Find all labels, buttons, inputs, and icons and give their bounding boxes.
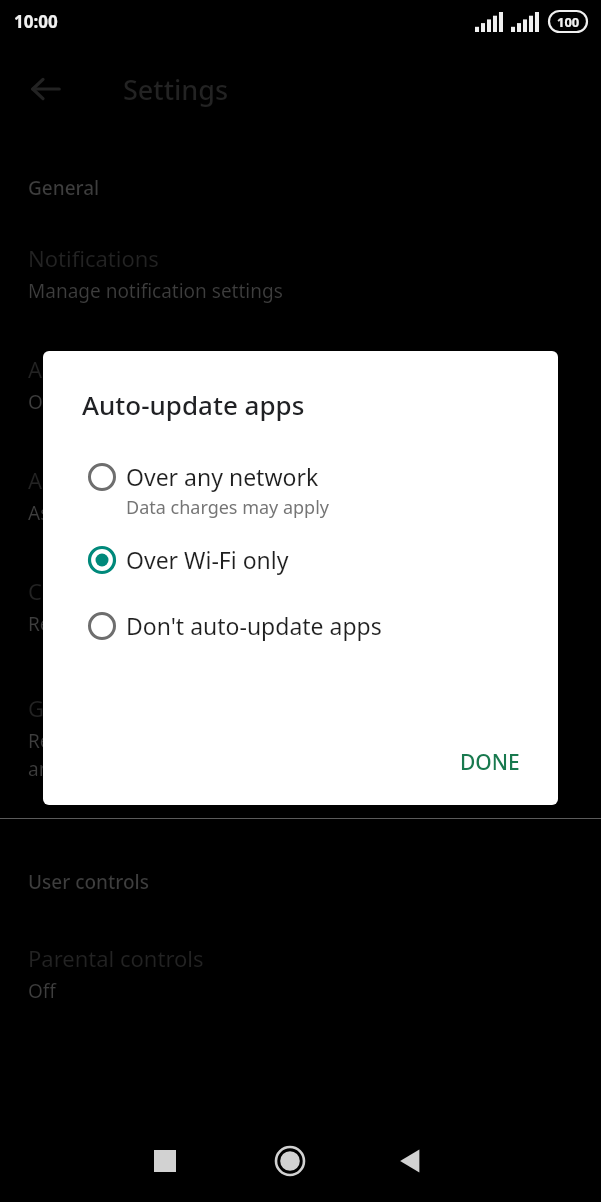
button[interactable]: Parental controls: [28, 943, 573, 1004]
staticText: Over Wi-Fi only: [126, 544, 289, 575]
button[interactable]: Over Wi-Fi only: [43, 536, 558, 584]
staticText: General preferences: [28, 693, 238, 723]
staticText: User controls: [28, 869, 149, 895]
staticText: 10:00: [14, 10, 58, 33]
staticText: Data charges may apply: [126, 495, 330, 520]
staticText: Settings: [123, 71, 229, 108]
staticText: DONE: [460, 748, 520, 777]
staticText: App download preference: [28, 465, 295, 495]
staticText: Auto-update apps: [28, 354, 213, 384]
staticText: Notifications: [28, 243, 159, 273]
staticText: Auto-update apps: [82, 387, 305, 422]
button[interactable]: Home: [258, 1129, 322, 1193]
staticText: General: [28, 175, 100, 201]
button[interactable]: Back: [378, 1129, 442, 1193]
staticText: Clear local search history: [28, 576, 286, 606]
staticText: Remove history in your wishlist, the Bet…: [28, 728, 474, 782]
staticText: Don't auto-update apps: [126, 610, 382, 641]
button[interactable]: Clear local search history: [28, 576, 573, 637]
staticText: Parental controls: [28, 943, 204, 973]
staticText: Over any network: [126, 461, 319, 492]
staticText: Off: [28, 978, 56, 1004]
staticText: Over Wi-Fi only: [28, 389, 163, 415]
button[interactable]: App download preference: [28, 465, 573, 526]
staticText: 100: [557, 13, 580, 31]
button[interactable]: General preferences: [28, 693, 573, 782]
button[interactable]: Back: [22, 65, 70, 113]
button[interactable]: Over any network: [43, 453, 558, 524]
button[interactable]: Don't auto-update apps: [43, 602, 558, 650]
button[interactable]: Notifications: [28, 243, 573, 304]
staticText: Remove recent searches from this device: [28, 611, 393, 637]
button[interactable]: Auto-update apps: [28, 354, 573, 415]
button[interactable]: DONE: [448, 740, 532, 785]
staticText: Manage notification settings: [28, 278, 283, 304]
button[interactable]: Recents: [133, 1129, 197, 1193]
staticText: Ask every time: [28, 500, 158, 526]
